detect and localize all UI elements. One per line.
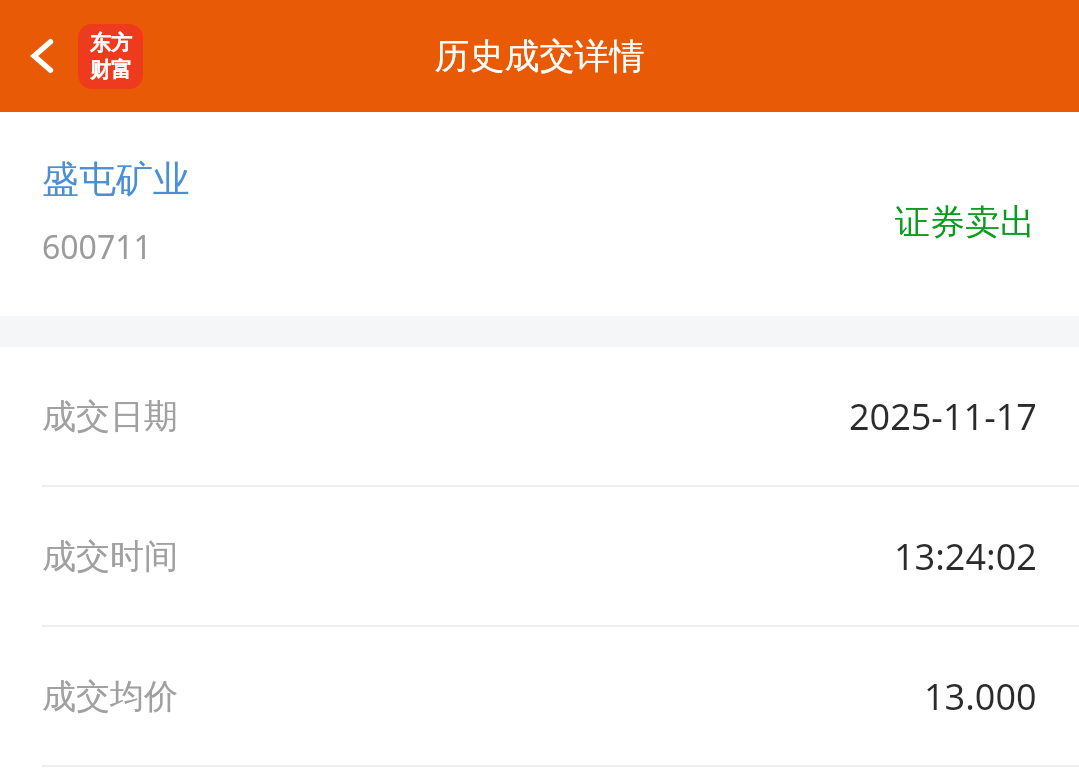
staticText: 成交日期 <box>42 395 178 438</box>
staticText: 成交均价 <box>42 675 178 718</box>
staticText: 成交时间 <box>42 535 178 578</box>
staticText: 历史成交详情 <box>0 34 1079 78</box>
staticText: 600711 <box>42 225 152 269</box>
button[interactable]: 成交均价 <box>0 627 1079 765</box>
button[interactable]: 成交日期 <box>0 347 1079 485</box>
button[interactable]: 东方财富 <box>78 24 143 89</box>
staticText: 盛屯矿业 <box>42 156 190 203</box>
button[interactable]: 成交时间 <box>0 487 1079 625</box>
staticText: 13:24:02 <box>894 532 1037 581</box>
staticText: 财富 <box>90 57 132 83</box>
staticText: 证券卖出 <box>895 200 1035 244</box>
staticText: 东方 <box>90 30 132 56</box>
staticText: 13.000 <box>924 672 1037 721</box>
button[interactable]: 返回 <box>12 25 74 87</box>
staticText: 2025-11-17 <box>849 392 1037 441</box>
